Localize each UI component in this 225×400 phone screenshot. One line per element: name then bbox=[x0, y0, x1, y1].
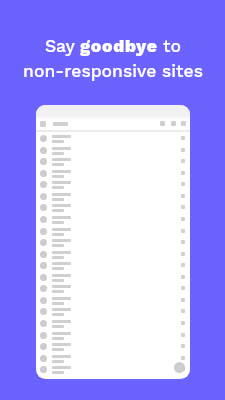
button[interactable] bbox=[36, 156, 190, 168]
button[interactable] bbox=[36, 318, 190, 330]
button[interactable]: Compose bbox=[174, 362, 185, 373]
button[interactable] bbox=[36, 133, 190, 145]
button[interactable] bbox=[36, 364, 190, 376]
button[interactable] bbox=[36, 237, 190, 249]
button[interactable] bbox=[36, 353, 190, 365]
button[interactable] bbox=[36, 283, 190, 295]
button[interactable]: App icon bbox=[40, 121, 46, 127]
button[interactable] bbox=[36, 191, 190, 203]
button[interactable] bbox=[36, 272, 190, 284]
button[interactable] bbox=[36, 202, 190, 214]
button[interactable] bbox=[36, 330, 190, 342]
button[interactable] bbox=[36, 306, 190, 318]
button[interactable] bbox=[36, 295, 190, 307]
button[interactable] bbox=[36, 226, 190, 238]
staticText: Say goodbye to non-responsive sites bbox=[23, 36, 203, 81]
button[interactable]: Maximise bbox=[171, 121, 176, 126]
button[interactable]: Minimise bbox=[160, 121, 165, 126]
button[interactable] bbox=[36, 249, 190, 261]
button[interactable] bbox=[36, 214, 190, 226]
button[interactable]: Close bbox=[181, 121, 186, 126]
button[interactable] bbox=[36, 341, 190, 353]
button[interactable] bbox=[36, 145, 190, 157]
button[interactable] bbox=[36, 168, 190, 180]
button[interactable] bbox=[36, 179, 190, 191]
button[interactable] bbox=[36, 260, 190, 272]
